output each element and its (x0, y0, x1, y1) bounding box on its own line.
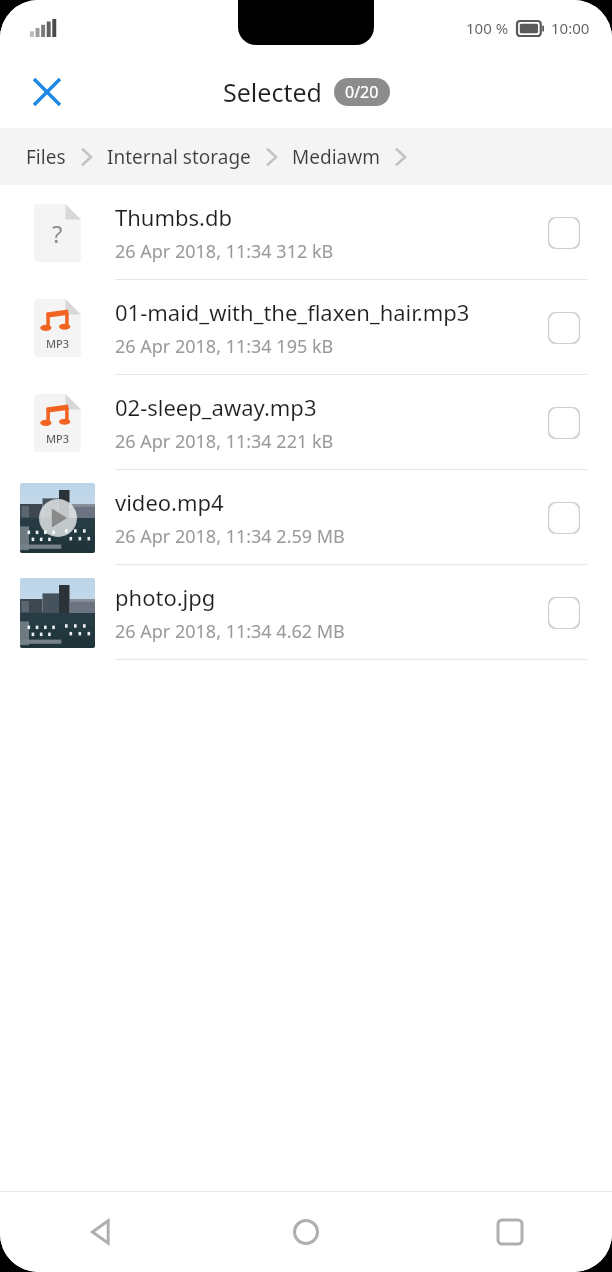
button[interactable]: video.mp4 (0, 470, 612, 565)
staticText: 26 Apr 2018, 11:34 4.62 MB (115, 619, 345, 644)
staticText: MP3 (46, 431, 70, 446)
button[interactable]: MP3 (0, 375, 612, 470)
staticText: 26 Apr 2018, 11:34 221 kB (115, 429, 334, 454)
staticText: 100 % (466, 18, 509, 38)
button[interactable]: MP3 (0, 280, 612, 375)
button[interactable]: Select 01-maid_with_the_flaxen_hair.mp3 (516, 280, 612, 375)
staticText: Selected (223, 75, 322, 109)
button[interactable]: Select photo.jpg (516, 565, 612, 660)
staticText: Mediawm (292, 144, 380, 170)
staticText: MP3 (46, 336, 70, 351)
staticText: Files (26, 144, 66, 170)
staticText: Thumbs.db (115, 202, 233, 232)
button[interactable]: photo.jpg (0, 565, 612, 660)
button[interactable]: Select 02-sleep_away.mp3 (516, 375, 612, 470)
button[interactable]: Internal storage (107, 140, 251, 174)
staticText: 10:00 (551, 18, 590, 38)
button[interactable]: Select Thumbs.db (516, 185, 612, 280)
staticText: 26 Apr 2018, 11:34 312 kB (115, 239, 334, 264)
staticText: 02-sleep_away.mp3 (115, 392, 317, 422)
staticText: ? (52, 217, 63, 250)
staticText: 26 Apr 2018, 11:34 2.59 MB (115, 524, 345, 549)
button[interactable]: Files (26, 140, 66, 174)
button[interactable]: Home (204, 1192, 408, 1272)
staticText: photo.jpg (115, 582, 216, 612)
button[interactable]: Mediawm (292, 140, 380, 174)
button[interactable]: ? (0, 185, 612, 280)
button[interactable]: Close (18, 63, 76, 121)
staticText: 01-maid_with_the_flaxen_hair.mp3 (115, 297, 470, 327)
staticText: 26 Apr 2018, 11:34 195 kB (115, 334, 334, 359)
staticText: Internal storage (107, 144, 251, 170)
staticText: video.mp4 (115, 487, 224, 517)
staticText: 0/20 (345, 81, 379, 103)
button[interactable]: Recents (408, 1192, 612, 1272)
button[interactable]: Back (0, 1192, 204, 1272)
button[interactable]: Select video.mp4 (516, 470, 612, 565)
